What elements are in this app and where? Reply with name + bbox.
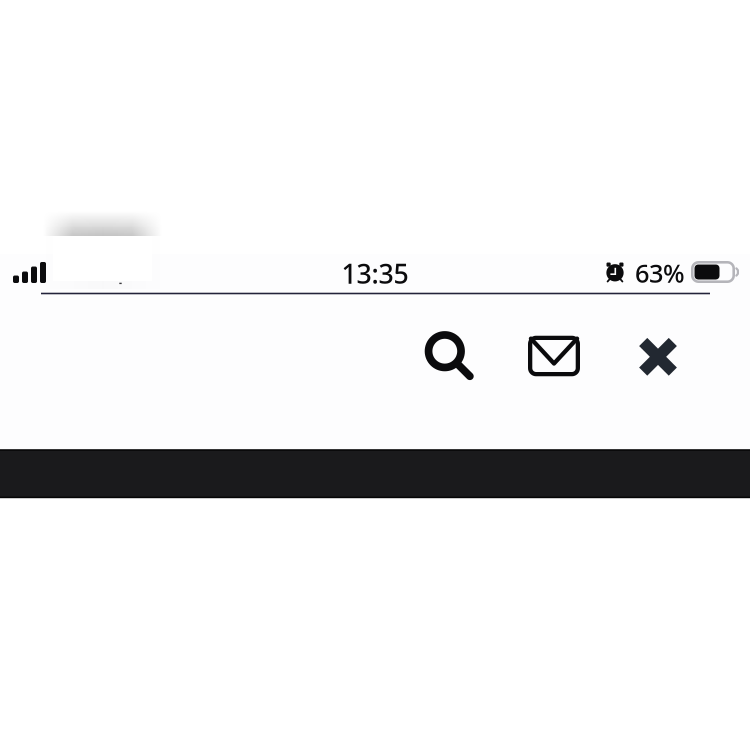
staticText: 63% xyxy=(635,256,685,290)
button[interactable]: Close xyxy=(624,323,692,391)
button[interactable]: Search xyxy=(415,322,483,390)
staticText: 13:35 xyxy=(341,256,408,291)
button[interactable]: Mail xyxy=(520,322,588,390)
